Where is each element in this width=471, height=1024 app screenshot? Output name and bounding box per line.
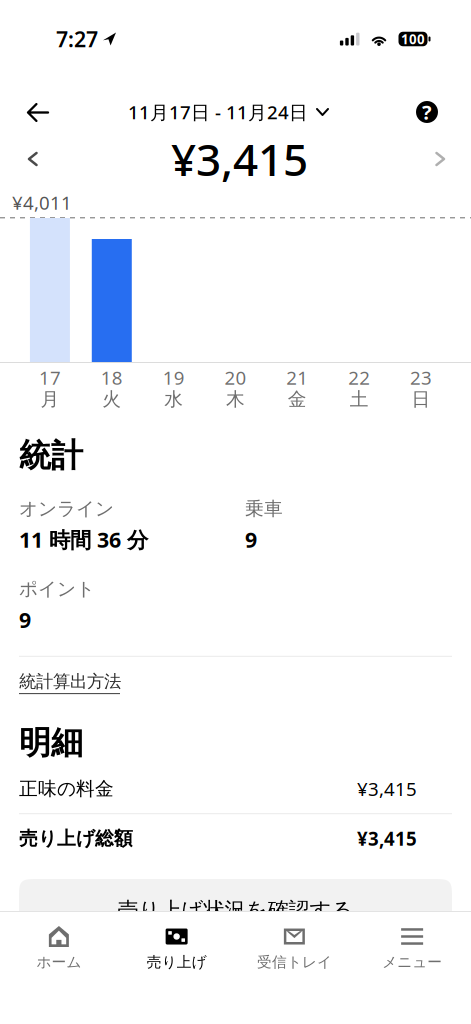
staticText: ¥3,415 [357,826,417,851]
button[interactable]: Help [404,72,461,134]
button[interactable]: Back [10,74,60,131]
button[interactable]: 売り上げ状況を確認する [19,879,452,941]
button[interactable]: 11月17日 - 11月24日 [122,73,349,133]
staticText: 23 [410,365,432,390]
staticText: 18 [101,365,123,390]
staticText: 金 [288,388,307,411]
staticText: 売り上げ [147,953,207,971]
staticText: 20 [224,365,246,390]
staticText: ¥4,011 [12,190,72,215]
staticText: 19 [163,365,185,390]
staticText: 木 [226,388,245,411]
staticText: 11 時間 36 分 [19,525,148,553]
button[interactable]: 売り上げ [118,912,236,971]
staticText: 月 [40,388,59,411]
staticText: ¥3,415 [171,130,308,188]
staticText: 17 [39,365,61,390]
staticText: オンライン [19,497,114,520]
button[interactable]: 統計算出方法 [19,657,121,694]
button[interactable]: 受信トレイ [235,912,353,971]
staticText: 統計算出方法 [19,671,121,692]
staticText: 明細 [19,723,83,762]
button[interactable]: Next week [422,135,471,183]
staticText: ? [422,99,432,125]
staticText: 売り上げ状況を確認する [117,897,353,923]
staticText: ホーム [36,953,81,971]
staticText: メニュー [382,953,442,971]
button[interactable]: Previous week [0,135,50,183]
staticText: ¥3,415 [357,776,417,801]
staticText: 日 [412,388,431,411]
staticText: 正味の料金 [19,777,114,800]
staticText: 9 [245,525,257,553]
staticText: 乗車 [245,497,283,520]
staticText: 100 [401,30,425,48]
button[interactable]: ホーム [0,912,118,971]
staticText: 土 [350,388,369,411]
staticText: 水 [164,388,183,411]
staticText: 売り上げ総額 [19,827,133,850]
staticText: 22 [348,365,370,390]
staticText: 11月17日 - 11月24日 [128,100,308,124]
staticText: 受信トレイ [257,953,332,971]
button[interactable]: メニュー [353,912,471,971]
staticText: 21 [286,365,308,390]
staticText: 火 [102,388,121,411]
staticText: 9 [19,605,31,634]
staticText: ポイント [19,578,95,600]
staticText: 統計 [19,436,83,475]
staticText: 7:27 [56,25,98,53]
